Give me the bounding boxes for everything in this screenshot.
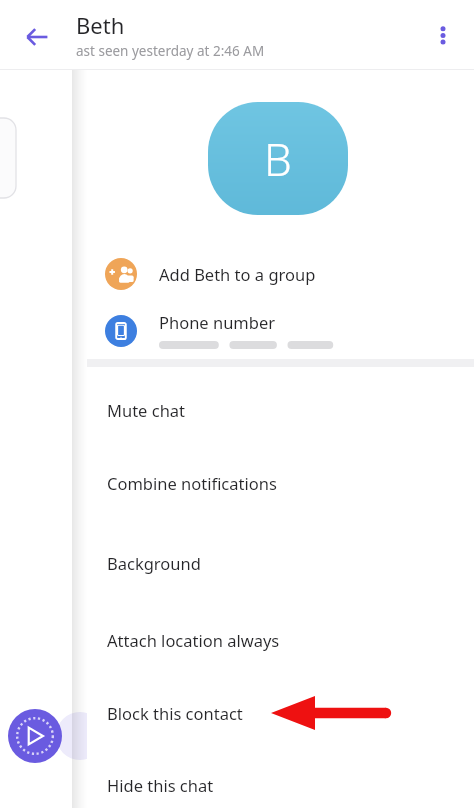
staticText: Combine notifications	[107, 472, 277, 494]
staticText: Hide this chat	[107, 774, 214, 796]
staticText: Phone number	[159, 311, 276, 333]
staticText: Background	[107, 552, 201, 574]
staticText: Block this contact	[107, 702, 243, 724]
button[interactable]: Hide this chat	[87, 759, 474, 808]
button[interactable]: Attach location always	[87, 614, 474, 666]
staticText: B	[264, 129, 292, 189]
button[interactable]: Play voice message	[8, 709, 62, 763]
button[interactable]: Back	[14, 14, 60, 60]
staticText: ast seen yesterday at 2:46 AM	[76, 42, 265, 60]
button[interactable]: Add Beth to a group	[87, 246, 474, 302]
button[interactable]: Combine notifications	[87, 457, 474, 509]
button[interactable]: Phone number	[87, 302, 474, 360]
button[interactable]: Background	[87, 537, 474, 589]
button[interactable]: More options	[420, 12, 466, 58]
staticText: Mute chat	[107, 399, 186, 421]
staticText: Add Beth to a group	[159, 263, 316, 285]
button[interactable]: Block this contact	[87, 687, 474, 739]
staticText: Attach location always	[107, 629, 280, 651]
staticText: Beth	[76, 10, 125, 40]
button[interactable]: Mute chat	[87, 384, 474, 436]
